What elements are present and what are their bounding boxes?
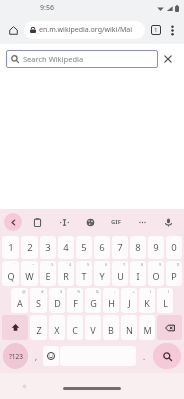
button[interactable]: #: [30, 288, 47, 313]
staticText: $: [60, 289, 63, 294]
button[interactable]: Home gesture: [63, 387, 121, 390]
staticText: 5: [81, 241, 87, 254]
button[interactable]: Back: [4, 213, 22, 231]
staticText: 4: [69, 262, 72, 267]
staticText: E: [45, 270, 51, 282]
button[interactable]: More options: [164, 22, 180, 38]
button[interactable]: More: [133, 213, 151, 231]
button[interactable]: ): [157, 288, 173, 313]
button[interactable]: 6: [94, 236, 110, 259]
button[interactable]: 7: [112, 261, 128, 286]
staticText: Q: [7, 270, 15, 282]
button[interactable]: V: [85, 315, 101, 340]
staticText: ?123: [9, 352, 23, 361]
staticText: U: [117, 270, 124, 282]
staticText: en.m.wikipedia.org/wiki/Mai: [39, 25, 133, 35]
button[interactable]: &: [85, 288, 101, 313]
staticText: 9: [153, 241, 159, 254]
button[interactable]: 4: [58, 261, 74, 286]
staticText: #: [41, 289, 44, 294]
button[interactable]: ,: [30, 341, 43, 371]
staticText: Search Wikipedia: [23, 54, 84, 64]
staticText: M: [143, 324, 152, 336]
button[interactable]: 1: [2, 236, 19, 259]
button[interactable]: 4: [58, 236, 74, 259]
staticText: R: [63, 270, 69, 282]
button[interactable]: B: [103, 315, 119, 340]
button[interactable]: $: [49, 288, 65, 313]
staticText: ~: [32, 262, 35, 267]
button[interactable]: X: [49, 315, 65, 340]
button[interactable]: C: [67, 315, 83, 340]
button[interactable]: @: [11, 288, 28, 313]
staticText: 7: [117, 241, 123, 254]
button[interactable]: Close search: [158, 49, 178, 69]
button[interactable]: en.m.wikipedia.org/wiki/Mai: [24, 21, 145, 39]
staticText: 2: [27, 241, 33, 254]
staticText: A: [17, 297, 23, 309]
button[interactable]: +: [121, 288, 137, 313]
staticText: &: [96, 289, 99, 294]
staticText: P: [171, 270, 177, 282]
button[interactable]: ~: [21, 261, 38, 286]
button[interactable]: 8: [130, 261, 146, 286]
button[interactable]: 7: [112, 236, 128, 259]
button[interactable]: 3: [40, 261, 56, 286]
staticText: 9:56: [40, 3, 54, 13]
button[interactable]: 0: [166, 261, 182, 286]
staticText: 5: [87, 262, 90, 267]
staticText: N: [126, 324, 133, 336]
button[interactable]: N: [121, 315, 137, 340]
button[interactable]: Emoji: [43, 346, 59, 366]
staticText: S: [36, 297, 41, 309]
staticText: W: [25, 270, 34, 282]
staticText: F: [73, 297, 78, 309]
button[interactable]: Voice input: [159, 213, 177, 231]
button[interactable]: ?123: [3, 343, 28, 369]
button[interactable]: GIF: [107, 213, 125, 231]
button[interactable]: Search: [153, 343, 181, 369]
staticText: 0: [171, 241, 177, 254]
button[interactable]: 9: [148, 236, 164, 259]
button[interactable]: 9: [148, 261, 164, 286]
button[interactable]: .: [137, 341, 151, 371]
button[interactable]: 5: [76, 236, 92, 259]
button[interactable]: 6: [94, 261, 110, 286]
staticText: K: [144, 297, 150, 309]
button[interactable]: -: [103, 288, 119, 313]
button[interactable]: Clipboard: [28, 213, 46, 231]
button[interactable]: `: [2, 261, 19, 286]
staticText: V: [90, 324, 96, 336]
staticText: 4: [63, 241, 69, 254]
button[interactable]: 3: [40, 236, 56, 259]
button[interactable]: Stickers: [81, 213, 99, 231]
staticText: GIF: [111, 218, 121, 226]
staticText: +: [132, 289, 135, 294]
staticText: (: [150, 289, 152, 294]
staticText: G: [90, 297, 97, 309]
staticText: H: [108, 297, 115, 309]
button[interactable]: 8: [130, 236, 146, 259]
button[interactable]: M: [139, 315, 155, 340]
button[interactable]: %: [67, 288, 83, 313]
staticText: L: [163, 297, 168, 309]
button[interactable]: Tabs: [148, 22, 164, 38]
staticText: 8: [135, 241, 141, 254]
button[interactable]: 5: [76, 261, 92, 286]
staticText: 6: [99, 241, 105, 254]
button[interactable]: Home: [4, 21, 22, 39]
staticText: X: [54, 324, 60, 336]
button[interactable]: (: [139, 288, 155, 313]
button[interactable]: Backspace: [157, 315, 182, 340]
staticText: ): [168, 289, 170, 294]
button[interactable]: Search Wikipedia: [6, 50, 158, 68]
button[interactable]: Text editing: [55, 213, 73, 231]
staticText: 8: [141, 262, 144, 267]
button[interactable]: 0: [166, 236, 182, 259]
button[interactable]: Z: [30, 315, 47, 340]
staticText: I: [136, 270, 140, 282]
button[interactable]: 2: [21, 236, 38, 259]
button[interactable]: Shift: [2, 315, 28, 340]
staticText: 9: [159, 262, 162, 267]
